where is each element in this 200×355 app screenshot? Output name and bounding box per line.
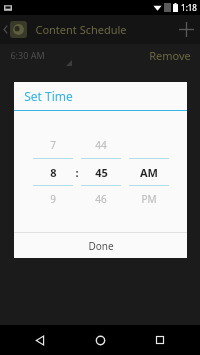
button[interactable]: Home: [80, 325, 120, 355]
staticText: PM: [141, 192, 157, 206]
button[interactable]: Navigate up: [0, 15, 30, 44]
button[interactable]: AM: [129, 159, 169, 185]
button[interactable]: 9: [33, 186, 73, 212]
staticText: 8: [50, 165, 57, 180]
staticText: Done: [88, 239, 114, 253]
button[interactable]: 7: [33, 132, 73, 158]
staticText: 9: [50, 192, 56, 206]
button[interactable]: Done: [14, 233, 187, 258]
staticText: Content Schedule: [35, 22, 127, 37]
staticText: AM: [140, 165, 158, 180]
button[interactable]: 46: [81, 186, 121, 212]
staticText: 44: [95, 138, 107, 152]
staticText: 45: [95, 165, 108, 180]
button[interactable]: 8: [33, 159, 73, 185]
staticText: 46: [95, 192, 107, 206]
button[interactable]: 45: [81, 159, 121, 185]
staticText: 7: [50, 138, 56, 152]
staticText: :: [75, 165, 79, 180]
staticText: Remove: [149, 48, 191, 63]
button[interactable]: Add: [172, 15, 200, 44]
button[interactable]: Recent apps: [140, 325, 180, 355]
button[interactable]: 6:30 AM: [10, 44, 72, 66]
button[interactable]: 44: [81, 132, 121, 158]
staticText: Set Time: [24, 88, 73, 104]
button[interactable]: PM: [129, 186, 169, 212]
staticText: 6:30 AM: [10, 49, 45, 61]
button[interactable]: Remove: [149, 48, 191, 63]
button[interactable]: Back: [20, 325, 60, 355]
staticText: 1:18: [181, 2, 197, 13]
